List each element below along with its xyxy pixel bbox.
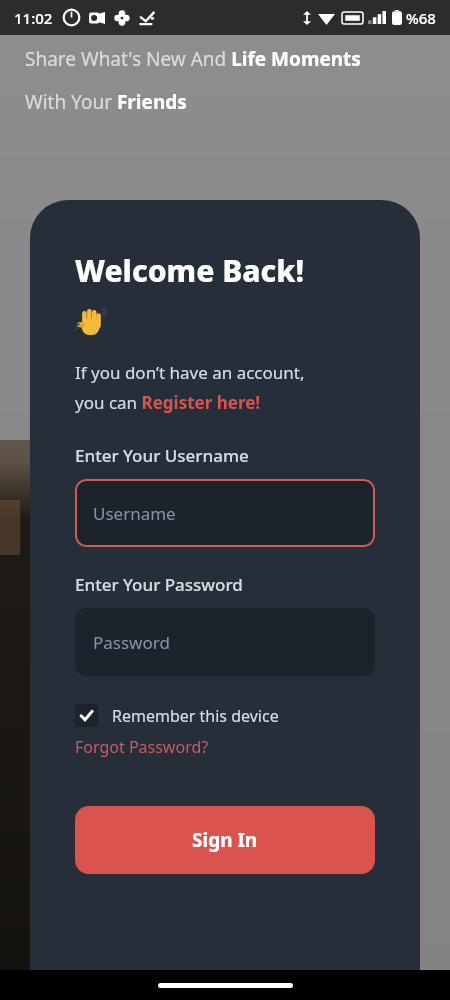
button[interactable]: Username	[75, 479, 375, 547]
button[interactable]: Password	[75, 608, 375, 676]
staticText: Enter Your Username	[75, 444, 249, 467]
button[interactable]: Remember this device	[75, 704, 279, 727]
staticText: Welcome Back!	[75, 250, 305, 291]
staticText: Username	[93, 502, 176, 525]
staticText: %68	[406, 8, 436, 28]
button[interactable]: Sign In	[75, 806, 375, 874]
staticText: Password	[93, 631, 170, 654]
staticText: Enter Your Password	[75, 573, 243, 596]
staticText: If you don’t have an account, you can Re…	[75, 361, 305, 414]
button[interactable]: Forgot Password?	[75, 736, 209, 758]
staticText: Sign In	[192, 827, 258, 853]
staticText: 11:02	[14, 8, 53, 28]
staticText: With Your Friends	[25, 89, 187, 115]
staticText: Share What's New And Life Moments	[25, 46, 361, 72]
button[interactable]: If you don’t have an account, you can Re…	[75, 361, 305, 414]
staticText: Forgot Password?	[75, 736, 209, 758]
staticText: Remember this device	[112, 705, 279, 727]
